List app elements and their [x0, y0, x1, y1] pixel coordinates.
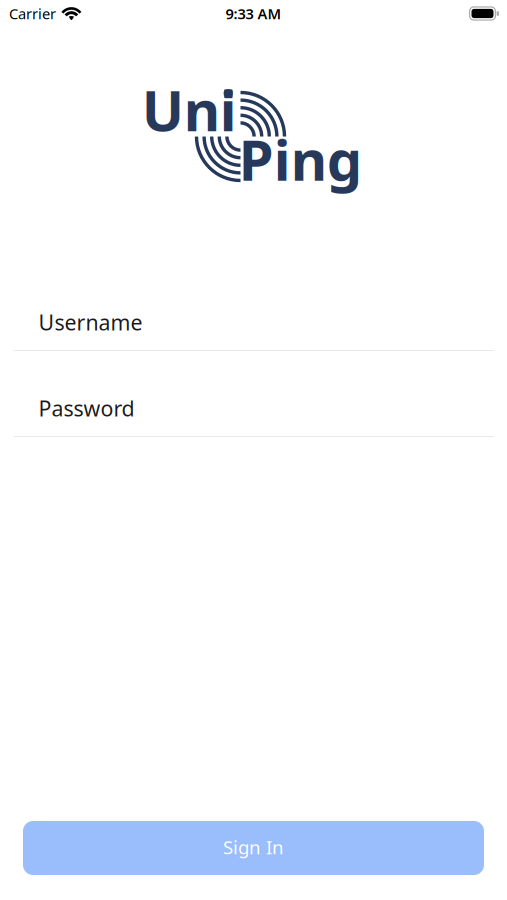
staticText: 9:33 AM: [225, 4, 281, 23]
staticText: Password: [38, 394, 134, 422]
button[interactable]: Username: [14, 308, 494, 354]
staticText: Username: [38, 308, 142, 336]
button[interactable]: Sign In: [23, 821, 484, 875]
staticText: Carrier: [9, 4, 56, 23]
button[interactable]: Password: [14, 394, 494, 440]
staticText: Ping: [239, 122, 362, 196]
staticText: Sign In: [223, 835, 284, 859]
staticText: Uni: [142, 72, 237, 147]
